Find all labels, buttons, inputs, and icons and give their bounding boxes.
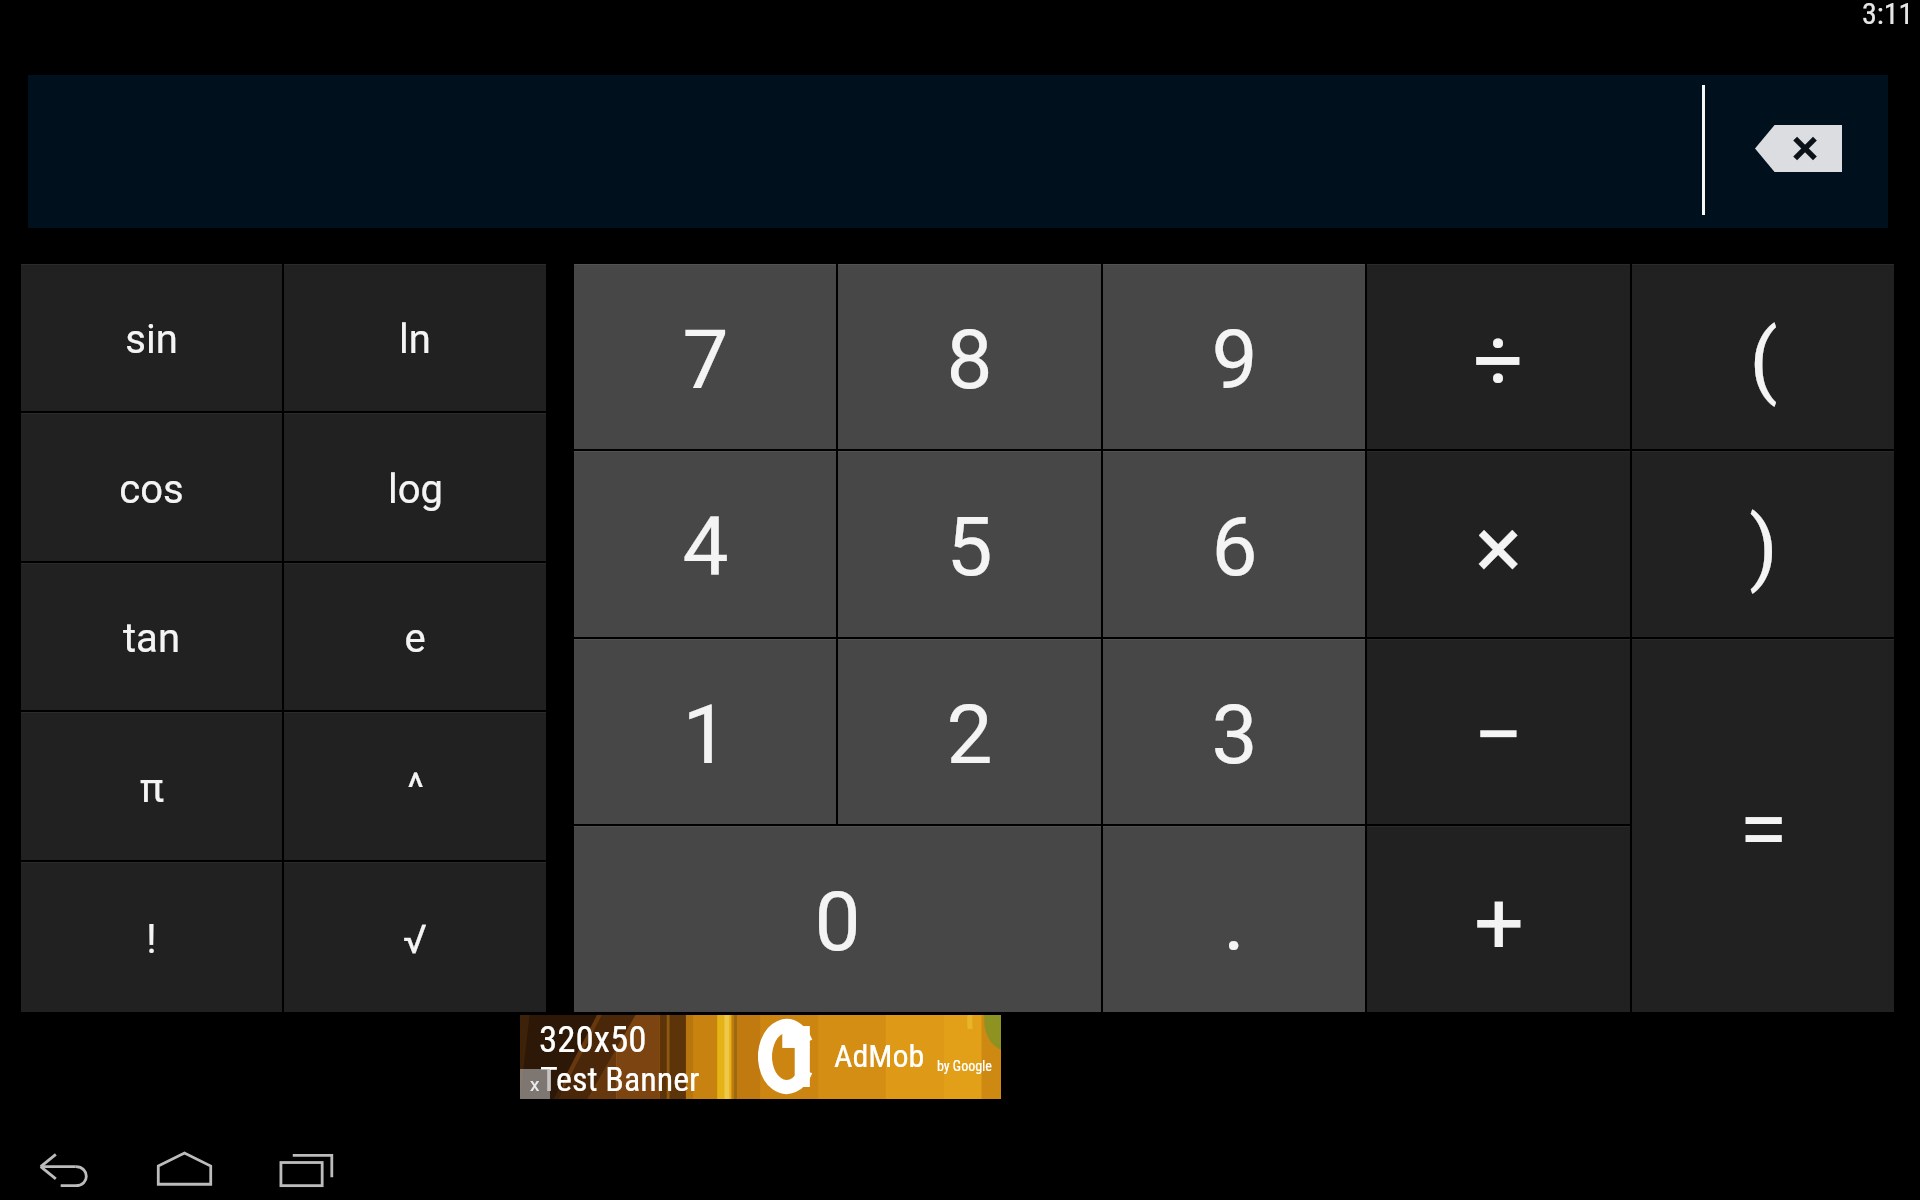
- staticText: ^: [407, 765, 424, 812]
- staticText: π: [140, 765, 164, 812]
- button[interactable]: ×: [1367, 451, 1630, 637]
- staticText: 8: [946, 312, 993, 408]
- button[interactable]: log: [284, 413, 546, 561]
- staticText: 3:11: [1862, 0, 1914, 31]
- staticText: 6: [1211, 499, 1258, 595]
- button[interactable]: ÷: [1367, 264, 1630, 449]
- button[interactable]: 6: [1103, 451, 1365, 637]
- staticText: +: [1474, 871, 1524, 974]
- button[interactable]: ): [1632, 451, 1894, 637]
- staticText: 0: [814, 874, 861, 970]
- staticText: Test Banner: [540, 1059, 700, 1099]
- staticText: tan: [123, 615, 180, 662]
- staticText: 9: [1211, 312, 1258, 408]
- staticText: (: [1749, 312, 1778, 408]
- button[interactable]: −: [1367, 639, 1630, 824]
- button[interactable]: π: [21, 712, 282, 860]
- staticText: 7: [682, 312, 729, 408]
- button[interactable]: 0: [574, 826, 1101, 1012]
- staticText: ÷: [1473, 308, 1524, 411]
- staticText: x: [530, 1073, 540, 1095]
- button[interactable]: 5: [838, 451, 1101, 637]
- button[interactable]: .: [1103, 826, 1365, 1012]
- button[interactable]: ^: [284, 712, 546, 860]
- button[interactable]: 2: [838, 639, 1101, 824]
- button[interactable]: cos: [21, 413, 282, 561]
- staticText: −: [1473, 683, 1524, 786]
- button[interactable]: =: [1632, 639, 1894, 1012]
- staticText: 4: [682, 499, 729, 595]
- button[interactable]: Recent apps: [279, 1153, 334, 1187]
- button[interactable]: 320x50: [520, 1015, 1001, 1099]
- staticText: cos: [119, 466, 184, 513]
- button[interactable]: Delete: [1755, 125, 1842, 172]
- button[interactable]: e: [284, 563, 546, 710]
- button[interactable]: tan: [21, 563, 282, 710]
- staticText: ×: [1475, 496, 1522, 599]
- button[interactable]: 8: [838, 264, 1101, 449]
- staticText: !: [146, 916, 157, 963]
- staticText: by Google: [937, 1058, 992, 1074]
- button[interactable]: 7: [574, 264, 836, 449]
- staticText: 1: [682, 687, 729, 783]
- staticText: 320x50: [539, 1018, 647, 1061]
- button[interactable]: sin: [21, 264, 282, 411]
- staticText: 2: [946, 687, 993, 783]
- staticText: 3: [1211, 687, 1258, 783]
- button[interactable]: 3: [1103, 639, 1365, 824]
- staticText: ): [1749, 499, 1778, 595]
- button[interactable]: ln: [284, 264, 546, 411]
- button[interactable]: Back: [38, 1152, 92, 1187]
- button[interactable]: (: [1632, 264, 1894, 449]
- staticText: =: [1739, 777, 1788, 880]
- button[interactable]: 4: [574, 451, 836, 637]
- staticText: 5: [946, 499, 993, 595]
- button[interactable]: Close ad: [520, 1069, 550, 1099]
- button[interactable]: !: [21, 862, 282, 1012]
- button[interactable]: Home: [156, 1151, 213, 1186]
- button[interactable]: 1: [574, 639, 836, 824]
- staticText: AdMob: [834, 1037, 925, 1075]
- button[interactable]: 9: [1103, 264, 1365, 449]
- staticText: e: [404, 615, 426, 662]
- button[interactable]: Delete: [28, 75, 1888, 228]
- staticText: √: [403, 916, 427, 963]
- button[interactable]: +: [1367, 826, 1630, 1012]
- staticText: log: [388, 466, 443, 513]
- staticText: sin: [125, 316, 178, 363]
- staticText: ln: [399, 316, 431, 363]
- button[interactable]: √: [284, 862, 546, 1012]
- staticText: .: [1223, 874, 1245, 970]
